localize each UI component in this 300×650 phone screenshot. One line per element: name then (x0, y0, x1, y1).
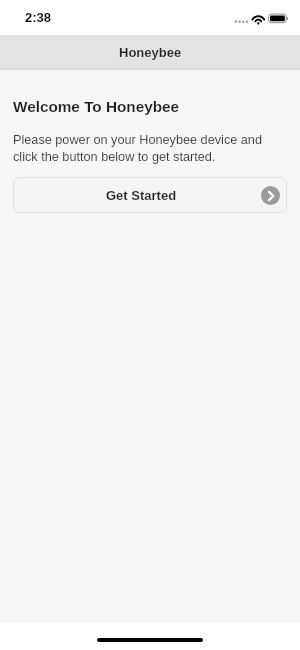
staticText: Please power on your Honeybee device and… (13, 133, 287, 163)
staticText: Welcome To Honeybee (13, 98, 180, 115)
staticText: 2:38 (25, 10, 52, 25)
staticText: Honeybee (119, 45, 182, 60)
button[interactable]: Get Started (13, 177, 287, 213)
staticText: Get Started (106, 188, 177, 203)
other: Cellular signal, Wi-Fi and battery statu… (230, 8, 292, 26)
